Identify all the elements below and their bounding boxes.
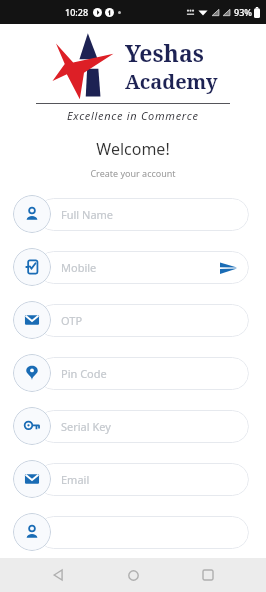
staticText: 10:28 <box>65 6 89 18</box>
staticText: Email <box>61 472 90 487</box>
staticText: Excellence in Commerce <box>67 108 199 123</box>
button[interactable]: Mobile <box>13 248 249 286</box>
staticText: Mobile <box>61 260 97 275</box>
staticText: 93% <box>234 6 252 18</box>
button[interactable]: Home <box>116 558 150 592</box>
staticText: Serial Key <box>61 419 111 434</box>
staticText: Yeshas <box>125 37 204 68</box>
staticText: Academy <box>125 68 218 95</box>
staticText: Pin Code <box>61 366 107 381</box>
button[interactable]: Email <box>13 460 249 498</box>
staticText: Create your account <box>0 167 266 179</box>
button[interactable]: Serial Key <box>13 407 249 445</box>
button[interactable]: Back <box>41 558 75 592</box>
button[interactable]: Pin Code <box>13 354 249 392</box>
button[interactable]: Recent apps <box>191 558 225 592</box>
staticText: OTP <box>61 313 83 328</box>
button[interactable] <box>13 513 249 551</box>
staticText: Welcome! <box>0 138 266 160</box>
staticText: Full Name <box>61 207 114 222</box>
button[interactable]: Full Name <box>13 195 249 233</box>
button[interactable]: OTP <box>13 301 249 339</box>
